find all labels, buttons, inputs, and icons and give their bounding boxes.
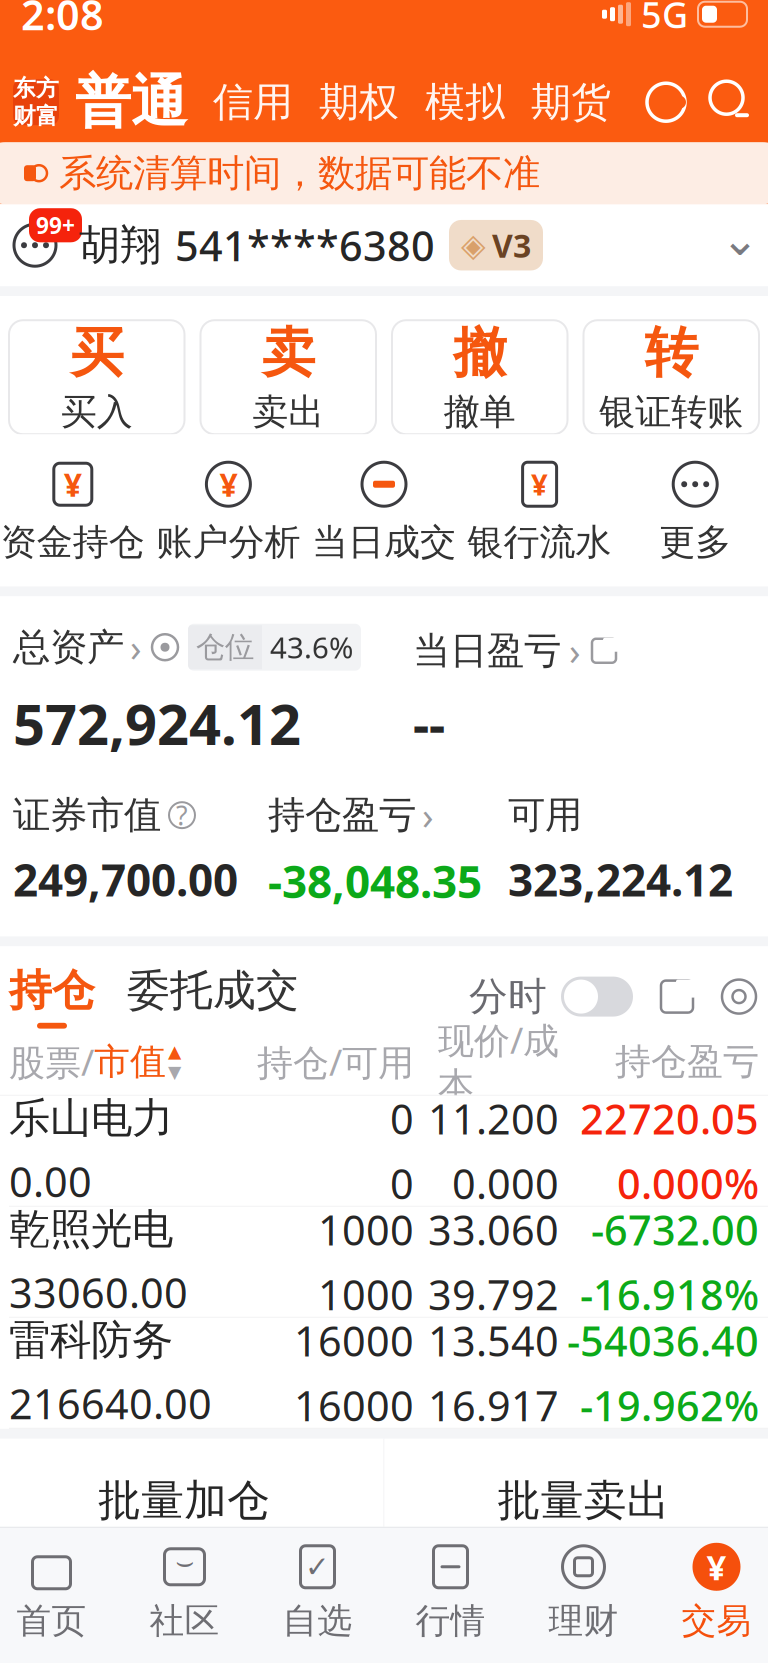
button[interactable]: ✓ xyxy=(251,1542,384,1642)
staticText: 东方 xyxy=(13,74,59,102)
staticText: 99+ xyxy=(36,210,75,240)
staticText: 首页 xyxy=(16,1600,86,1642)
staticText: 当日盈亏 xyxy=(413,628,561,674)
staticText: 0.00 xyxy=(9,1154,92,1209)
button[interactable]: 分时开关 xyxy=(561,977,633,1017)
staticText: ⌣ xyxy=(175,1548,194,1577)
staticText: 雷科防务 xyxy=(9,1315,173,1366)
staticText: 乐山电力 xyxy=(9,1093,173,1144)
staticText: 分时 xyxy=(469,973,547,1020)
staticText: -6732.00 xyxy=(591,1202,759,1257)
staticText: 模拟 xyxy=(425,78,505,127)
staticText: 33.060 xyxy=(428,1202,559,1257)
staticText: V3 xyxy=(492,224,531,266)
button[interactable]: 卖 xyxy=(200,320,376,434)
staticText: 22720.05 xyxy=(580,1091,759,1146)
staticText: 0.000% xyxy=(617,1156,759,1211)
button[interactable]: 期权 xyxy=(293,78,399,127)
staticText: 账户分析 xyxy=(156,520,300,564)
staticText: › xyxy=(569,626,581,676)
staticText: 期货 xyxy=(531,78,611,127)
staticText: 买 xyxy=(70,320,123,386)
staticText: 持仓盈亏 xyxy=(268,792,416,838)
staticText: 16.917 xyxy=(428,1378,559,1433)
button[interactable]: 设置 xyxy=(719,977,759,1017)
staticText: -19.962% xyxy=(580,1378,759,1433)
button[interactable]: 分享 xyxy=(657,977,697,1017)
staticText: 信用 xyxy=(213,78,293,127)
button[interactable]: 首页 xyxy=(0,1542,118,1642)
staticText: 行情 xyxy=(415,1600,485,1642)
button[interactable]: 持仓盈亏 xyxy=(268,790,434,840)
staticText: 16000 xyxy=(294,1313,414,1368)
staticText: 系统清算时间，数据可能不准 xyxy=(59,150,540,196)
staticText: 委托成交 xyxy=(127,964,299,1017)
staticText: 卖 xyxy=(262,320,315,386)
button[interactable]: 乐山电力 xyxy=(0,1096,768,1207)
button[interactable]: 雷科防务 xyxy=(0,1318,768,1429)
staticText: 541****6380 xyxy=(175,218,435,273)
staticText: ✓ xyxy=(305,1550,330,1583)
staticText: 银证转账 xyxy=(599,390,743,434)
button[interactable]: 刷新 xyxy=(643,79,689,125)
staticText: -16.918% xyxy=(580,1267,759,1322)
button[interactable]: 撤 xyxy=(392,320,567,434)
staticText: 更多 xyxy=(659,520,731,564)
staticText: 43.6% xyxy=(270,628,353,667)
button[interactable]: 更多 xyxy=(617,460,768,564)
staticText: 自选 xyxy=(282,1600,352,1642)
staticText: 1000 xyxy=(318,1267,414,1322)
staticText: ▼ xyxy=(168,1062,181,1082)
staticText: 持仓/可用 xyxy=(257,1038,414,1086)
button[interactable]: 当日盈亏 xyxy=(413,626,619,676)
staticText: 胡翔 xyxy=(79,220,161,271)
button[interactable]: ¥ xyxy=(650,1542,768,1642)
button[interactable]: 理财 xyxy=(517,1542,650,1642)
staticText: 13.540 xyxy=(428,1313,559,1368)
button[interactable]: 信用 xyxy=(187,78,293,127)
button[interactable]: ¥ xyxy=(151,460,306,564)
staticText: ¥ xyxy=(219,463,237,505)
staticText: 1000 xyxy=(318,1202,414,1257)
staticText: 批量卖出 xyxy=(498,1474,670,1527)
staticText: 市值 xyxy=(94,1040,166,1084)
staticText: 仓位 xyxy=(196,629,254,665)
button[interactable]: ¥ xyxy=(462,460,617,564)
staticText: 572,924.12 xyxy=(13,686,301,760)
button[interactable]: 模拟 xyxy=(399,78,505,127)
staticText: 5G xyxy=(641,0,688,38)
staticText: -- xyxy=(413,689,445,757)
button[interactable]: 行情 xyxy=(384,1542,517,1642)
staticText: 39.792 xyxy=(428,1267,559,1322)
staticText: ⌄ xyxy=(721,213,759,265)
button[interactable]: 搜索 xyxy=(707,78,755,126)
staticText: ¥ xyxy=(706,1544,726,1590)
button[interactable]: 总资产 xyxy=(13,622,142,672)
staticText: 总资产 xyxy=(13,624,124,670)
staticText: 股票/ xyxy=(9,1038,94,1086)
staticText: 0.000 xyxy=(452,1156,559,1211)
button[interactable]: 当日成交 xyxy=(306,460,462,564)
button[interactable]: 持仓 xyxy=(9,964,95,1029)
staticText: -38,048.35 xyxy=(268,852,482,910)
button[interactable]: 转 xyxy=(583,320,759,434)
button[interactable]: 买 xyxy=(9,320,184,434)
button[interactable]: 批量加仓 xyxy=(0,1439,383,1527)
staticText: 资金持仓 xyxy=(1,520,145,564)
staticText: 16000 xyxy=(294,1378,414,1433)
staticText: ▲ xyxy=(168,1042,181,1061)
button[interactable]: ⌣ xyxy=(118,1542,251,1642)
staticText: 0 xyxy=(390,1156,414,1211)
button[interactable]: 显示金额 xyxy=(150,632,180,662)
button[interactable]: 乾照光电 xyxy=(0,1207,768,1318)
staticText: 撤单 xyxy=(444,390,516,434)
button[interactable]: 委托成交 xyxy=(95,964,299,1029)
button[interactable]: 99+ xyxy=(0,204,768,286)
button[interactable]: 期货 xyxy=(505,78,611,127)
button[interactable]: ¥ xyxy=(0,460,151,564)
staticText: 持仓 xyxy=(9,964,95,1017)
staticText: 转 xyxy=(645,320,698,386)
button[interactable]: 批量卖出 xyxy=(384,1439,768,1527)
staticText: 财富 xyxy=(13,102,59,130)
staticText: ? xyxy=(176,797,188,833)
